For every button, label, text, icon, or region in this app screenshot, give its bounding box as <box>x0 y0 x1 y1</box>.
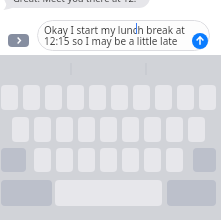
button[interactable] <box>144 148 161 172</box>
button[interactable]: Send <box>192 33 208 49</box>
button[interactable] <box>100 148 117 172</box>
button[interactable] <box>56 148 73 172</box>
staticText: Great. Meet you there at 12. <box>13 0 137 5</box>
button[interactable]: Show apps <box>8 34 29 47</box>
button[interactable] <box>34 148 51 172</box>
staticText: Okay I start my lunch break at 12:15 so … <box>44 23 185 48</box>
button[interactable] <box>78 148 95 172</box>
button[interactable]: Great. Meet you there at 12. <box>4 0 150 8</box>
button[interactable] <box>166 148 183 172</box>
button[interactable]: Okay I start my lunch break at 12:15 so … <box>37 20 210 51</box>
button[interactable] <box>122 148 139 172</box>
